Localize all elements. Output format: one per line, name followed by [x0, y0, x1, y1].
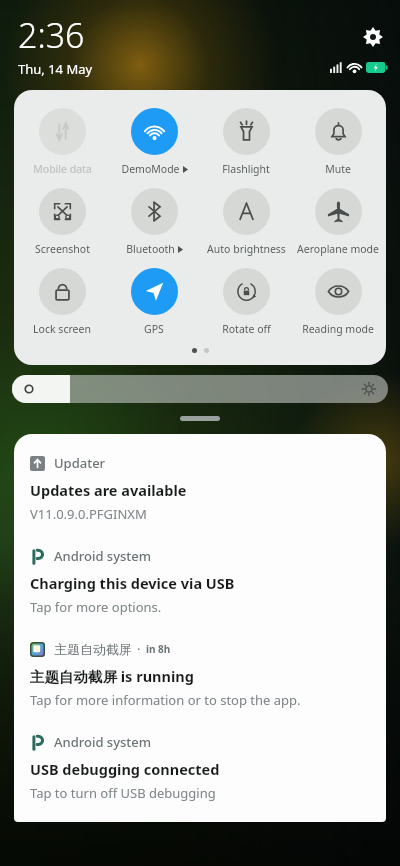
button[interactable]: Mute — [294, 104, 382, 180]
button[interactable]: Updater — [30, 454, 370, 523]
staticText: Reading mode — [302, 322, 374, 336]
button[interactable]: Brightness — [12, 375, 388, 403]
staticText: DemoMode — [121, 162, 180, 176]
staticText: Android system — [54, 733, 152, 751]
staticText: Screenshot — [35, 242, 90, 256]
staticText: · — [137, 640, 141, 658]
staticText: 2:36 — [18, 12, 85, 58]
staticText: Auto brightness — [207, 242, 286, 256]
button[interactable]: Mobile data — [18, 104, 106, 180]
staticText: USB debugging connected — [30, 759, 220, 779]
staticText: Flashlight — [222, 162, 270, 176]
button[interactable]: Bluetooth — [110, 184, 198, 260]
button[interactable]: 主题自动截屏 — [30, 640, 370, 709]
staticText: Rotate off — [222, 322, 271, 336]
staticText: V11.0.9.0.PFGINXM — [30, 505, 147, 523]
button[interactable]: Settings — [360, 24, 386, 50]
staticText: Updates are available — [30, 480, 187, 500]
button[interactable]: Lock screen — [18, 264, 106, 340]
staticText: Android system — [54, 547, 152, 565]
staticText: GPS — [144, 322, 164, 336]
staticText: in 8h — [146, 642, 171, 656]
staticText: Aeroplane mode — [297, 242, 379, 256]
button[interactable]: Reading mode — [294, 264, 382, 340]
staticText: Thu, 14 May — [18, 60, 93, 78]
button[interactable]: DemoMode — [110, 104, 198, 180]
staticText: Mobile data — [33, 162, 92, 176]
button[interactable]: Auto brightness — [202, 184, 290, 260]
button[interactable]: GPS — [110, 264, 198, 340]
button[interactable]: Flashlight — [202, 104, 290, 180]
staticText: Mute — [325, 162, 351, 176]
button[interactable]: Screenshot — [18, 184, 106, 260]
staticText: Updater — [54, 454, 106, 472]
button[interactable]: Android system — [30, 547, 370, 616]
staticText: Charging this device via USB — [30, 573, 235, 593]
staticText: Tap for more information or to stop the … — [30, 691, 301, 709]
staticText: 主题自动截屏 — [54, 641, 132, 657]
button[interactable]: Android system — [30, 733, 370, 802]
staticText: Tap for more options. — [30, 598, 162, 616]
staticText: Lock screen — [33, 322, 91, 336]
button[interactable]: Expand — [180, 416, 220, 421]
button[interactable]: Aeroplane mode — [294, 184, 382, 260]
staticText: 主题自动截屏 is running — [30, 666, 194, 686]
button[interactable]: Rotate off — [202, 264, 290, 340]
staticText: Bluetooth — [126, 242, 175, 256]
staticText: Tap to turn off USB debugging — [30, 784, 216, 802]
